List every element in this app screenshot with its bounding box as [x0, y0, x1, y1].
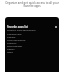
staticText: Recently used applications: [7, 29, 36, 32]
staticText: Gallery: [7, 48, 15, 51]
staticText: Calendar app: [7, 33, 22, 36]
staticText: Clock and alarms: [7, 39, 26, 42]
button[interactable]: Calendar app: [5, 33, 59, 36]
staticText: Contacts: [7, 42, 17, 45]
staticText: Camera: [7, 36, 16, 39]
button[interactable]: Gallery: [5, 48, 59, 51]
staticText: Organize and get quick access to all you…: [2, 1, 62, 8]
button[interactable]: Favorite apps list: [5, 25, 59, 28]
staticText: Favorite apps list: [7, 25, 29, 28]
staticText: Maps: [7, 51, 13, 54]
button[interactable]: Contacts: [5, 42, 59, 45]
button[interactable]: Files manager: [5, 45, 59, 48]
button[interactable]: Maps: [5, 51, 59, 54]
staticText: Files manager: [7, 45, 23, 48]
button[interactable]: Clock and alarms: [5, 39, 59, 42]
button[interactable]: Recently used applications: [5, 29, 59, 32]
button[interactable]: Camera: [5, 36, 59, 39]
